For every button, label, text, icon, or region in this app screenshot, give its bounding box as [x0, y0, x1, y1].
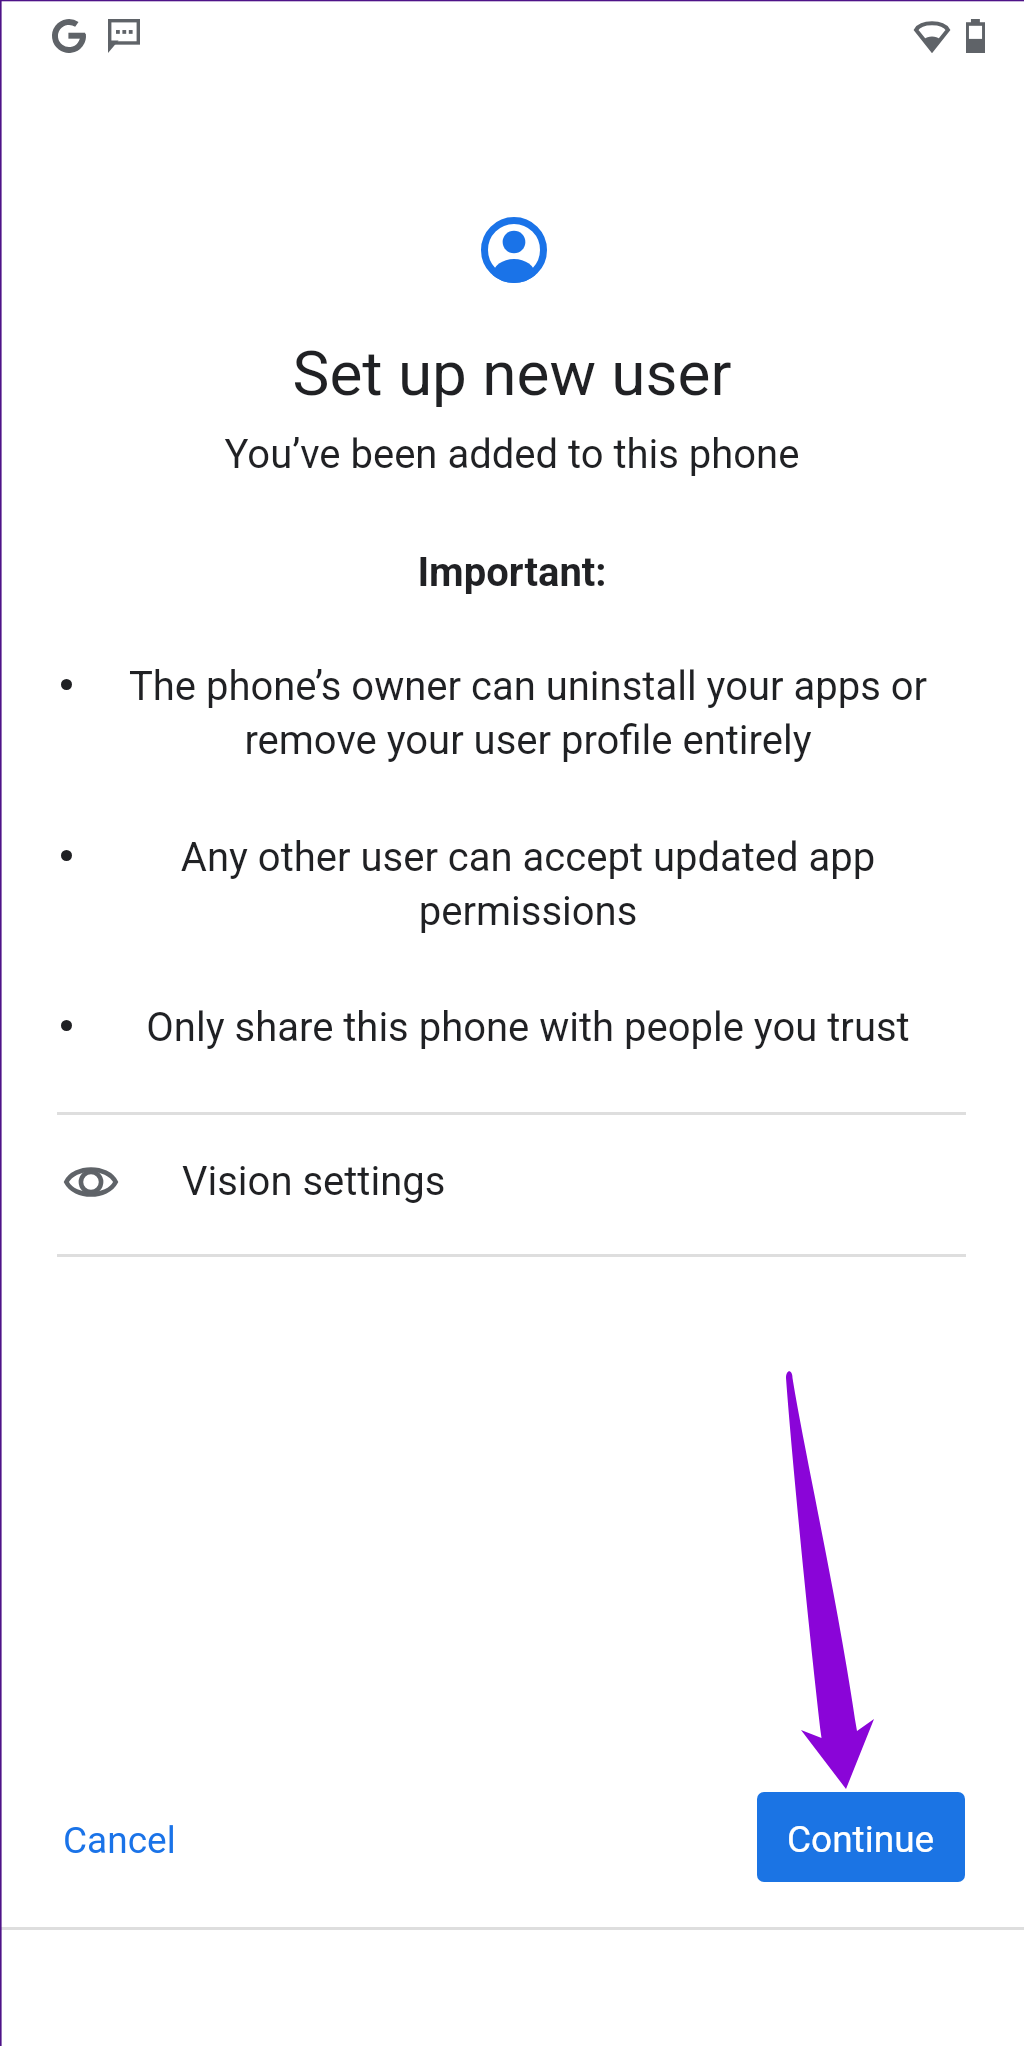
button[interactable]: Continue	[757, 1792, 965, 1882]
staticText: The phone’s owner can uninstall your app…	[115, 663, 941, 764]
button[interactable]: Cancel	[43, 1805, 196, 1876]
staticText: Only share this phone with people you tr…	[115, 1004, 941, 1051]
staticText: Vision settings	[182, 1158, 446, 1205]
staticText: Cancel	[63, 1819, 176, 1862]
other: Wi-Fi	[914, 19, 950, 52]
staticText: Any other user can accept updated app pe…	[115, 834, 941, 935]
other: Google	[52, 18, 86, 54]
staticText: Important:	[0, 549, 1024, 596]
other: Messages	[108, 19, 140, 53]
staticText: You’ve been added to this phone	[0, 431, 1024, 478]
staticText: Continue	[787, 1818, 935, 1861]
staticText: Set up new user	[0, 337, 1024, 410]
other: Battery	[966, 19, 985, 53]
button[interactable]: Vision settings	[0, 1110, 1024, 1253]
